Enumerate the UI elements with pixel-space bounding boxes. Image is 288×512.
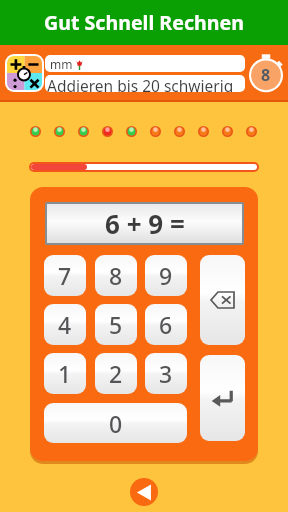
button[interactable]: 7 [44,255,86,296]
button[interactable]: App icon [7,56,42,90]
staticText: Addieren bis 20 schwierig [47,75,234,92]
button[interactable]: mm [45,55,245,72]
staticText: 7 [58,260,72,291]
staticText: mm [50,56,73,72]
staticText: 6 + 9 = [105,206,185,241]
button[interactable]: 0 [44,403,187,443]
button[interactable]: 8 [95,255,137,296]
button[interactable]: Addieren bis 20 schwierig [45,75,245,92]
button[interactable]: 5 [95,304,137,345]
button[interactable]: Back [130,478,158,506]
button[interactable]: 4 [44,304,86,345]
staticText: 8 [109,260,123,291]
staticText: 4 [58,309,72,340]
staticText: 0 [109,408,123,439]
button[interactable]: Enter [200,355,245,441]
button[interactable]: 6 [145,304,187,345]
staticText: 8 [261,64,271,86]
button[interactable]: Backspace [200,255,245,345]
staticText: 9 [159,260,173,291]
staticText: 5 [109,309,123,340]
staticText: 1 [58,358,72,389]
staticText: 6 [159,309,173,340]
button[interactable]: 3 [145,353,187,394]
staticText: 3 [159,358,173,389]
button[interactable]: 1 [44,353,86,394]
staticText: Gut Schnell Rechnen [44,9,244,36]
button[interactable]: Timer 8 [247,52,285,94]
button[interactable]: 9 [145,255,187,296]
staticText: 2 [109,358,123,389]
button[interactable]: 2 [95,353,137,394]
